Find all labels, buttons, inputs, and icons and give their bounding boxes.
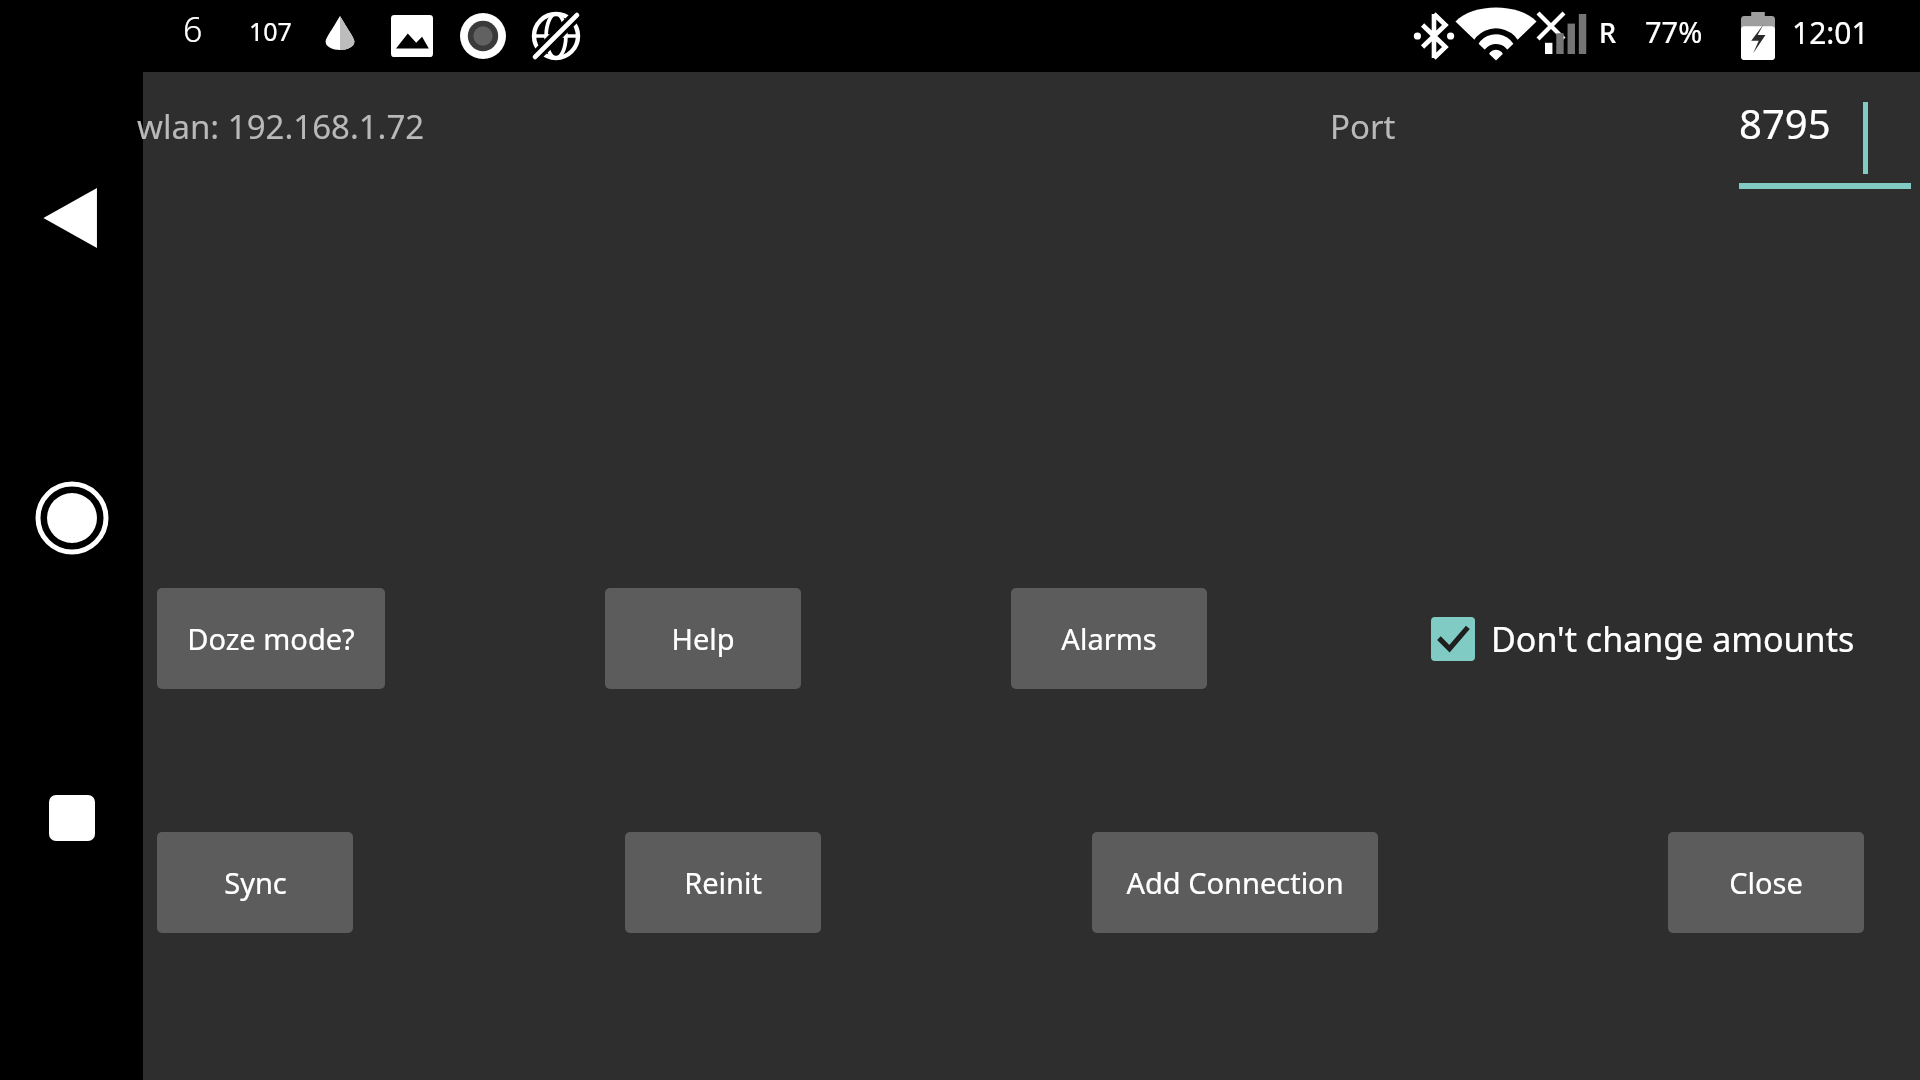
button[interactable]: Add Connection: [1092, 832, 1378, 933]
button[interactable]: Sync: [157, 832, 353, 933]
staticText: Doze mode?: [187, 619, 355, 658]
staticText: 77%: [1645, 12, 1703, 51]
button[interactable]: Help: [605, 588, 801, 689]
staticText: Reinit: [684, 863, 762, 902]
staticText: Add Connection: [1126, 863, 1344, 902]
button[interactable]: Close: [1668, 832, 1864, 933]
staticText: R: [1599, 14, 1617, 51]
staticText: Sync: [224, 863, 287, 902]
staticText: Close: [1729, 863, 1803, 902]
staticText: 8795: [1739, 96, 1831, 150]
button[interactable]: Home: [22, 468, 122, 568]
button[interactable]: Alarms: [1011, 588, 1207, 689]
button[interactable]: Doze mode?: [157, 588, 385, 689]
staticText: 107: [249, 14, 292, 48]
button[interactable]: Back: [22, 168, 122, 268]
staticText: wlan: 192.168.1.72: [137, 104, 425, 149]
staticText: 6: [183, 6, 203, 52]
staticText: 12:01: [1792, 12, 1869, 53]
button[interactable]: Reinit: [625, 832, 821, 933]
staticText: Don't change amounts: [1491, 616, 1855, 662]
staticText: Help: [671, 619, 735, 658]
staticText: Port: [1330, 104, 1396, 149]
staticText: Alarms: [1061, 619, 1157, 658]
button[interactable]: Don't change amounts: [1431, 588, 1855, 689]
button[interactable]: Recent apps: [22, 768, 122, 868]
